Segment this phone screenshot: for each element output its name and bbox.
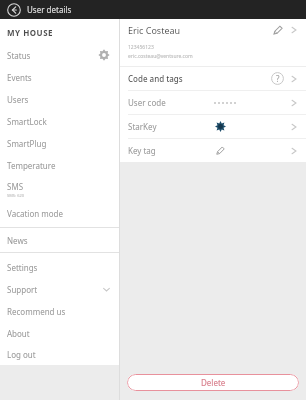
- staticText: SmartLock: [7, 116, 47, 127]
- button[interactable]: About: [0, 322, 119, 344]
- staticText: Recommend us: [7, 306, 66, 317]
- button[interactable]: Code and tags: [120, 67, 306, 90]
- staticText: News: [7, 235, 28, 246]
- staticText: MY HOUSE: [7, 27, 54, 38]
- staticText: Status: [7, 50, 31, 61]
- staticText: SMS: 620: [7, 193, 24, 198]
- staticText: Vacation mode: [7, 208, 64, 219]
- button[interactable]: User code: [120, 91, 306, 114]
- staticText: About: [7, 328, 30, 339]
- button[interactable]: Delete: [127, 374, 299, 391]
- staticText: SMS: [7, 181, 24, 192]
- button[interactable]: Users: [0, 88, 119, 110]
- staticText: SmartPlug: [7, 138, 47, 149]
- button[interactable]: Settings: [0, 256, 119, 278]
- staticText: Temperature: [7, 160, 56, 171]
- button[interactable]: Key tag: [120, 139, 306, 162]
- staticText: StarKey: [128, 121, 157, 132]
- staticText: 123456123: [128, 44, 154, 51]
- staticText: User code: [128, 97, 166, 108]
- button[interactable]: Back: [6, 2, 22, 18]
- button[interactable]: SMS: [0, 176, 119, 202]
- staticText: Settings: [7, 262, 38, 273]
- button[interactable]: News: [0, 228, 119, 252]
- staticText: ?: [276, 73, 280, 84]
- button[interactable]: Recommend us: [0, 300, 119, 322]
- button[interactable]: Status settings: [97, 48, 111, 62]
- button[interactable]: SmartLock: [0, 110, 119, 132]
- staticText: Users: [7, 94, 29, 105]
- staticText: Support: [7, 284, 38, 295]
- staticText: Delete: [201, 377, 226, 388]
- button[interactable]: Temperature: [0, 154, 119, 176]
- staticText: Eric Costeau: [128, 24, 181, 36]
- button[interactable]: Vacation mode: [0, 202, 119, 224]
- button[interactable]: Eric Costeau: [120, 19, 306, 40]
- button[interactable]: SmartPlug: [0, 132, 119, 154]
- staticText: Code and tags: [128, 73, 183, 84]
- button[interactable]: Status: [0, 44, 119, 66]
- staticText: Key tag: [128, 145, 156, 156]
- button[interactable]: StarKey: [120, 115, 306, 138]
- staticText: User details: [27, 4, 72, 15]
- button[interactable]: Log out: [0, 344, 119, 365]
- button[interactable]: Events: [0, 66, 119, 88]
- staticText: eric.costeau@ventsure.com: [128, 53, 193, 60]
- staticText: Events: [7, 72, 32, 83]
- button[interactable]: Support: [0, 278, 119, 300]
- staticText: Log out: [7, 349, 36, 360]
